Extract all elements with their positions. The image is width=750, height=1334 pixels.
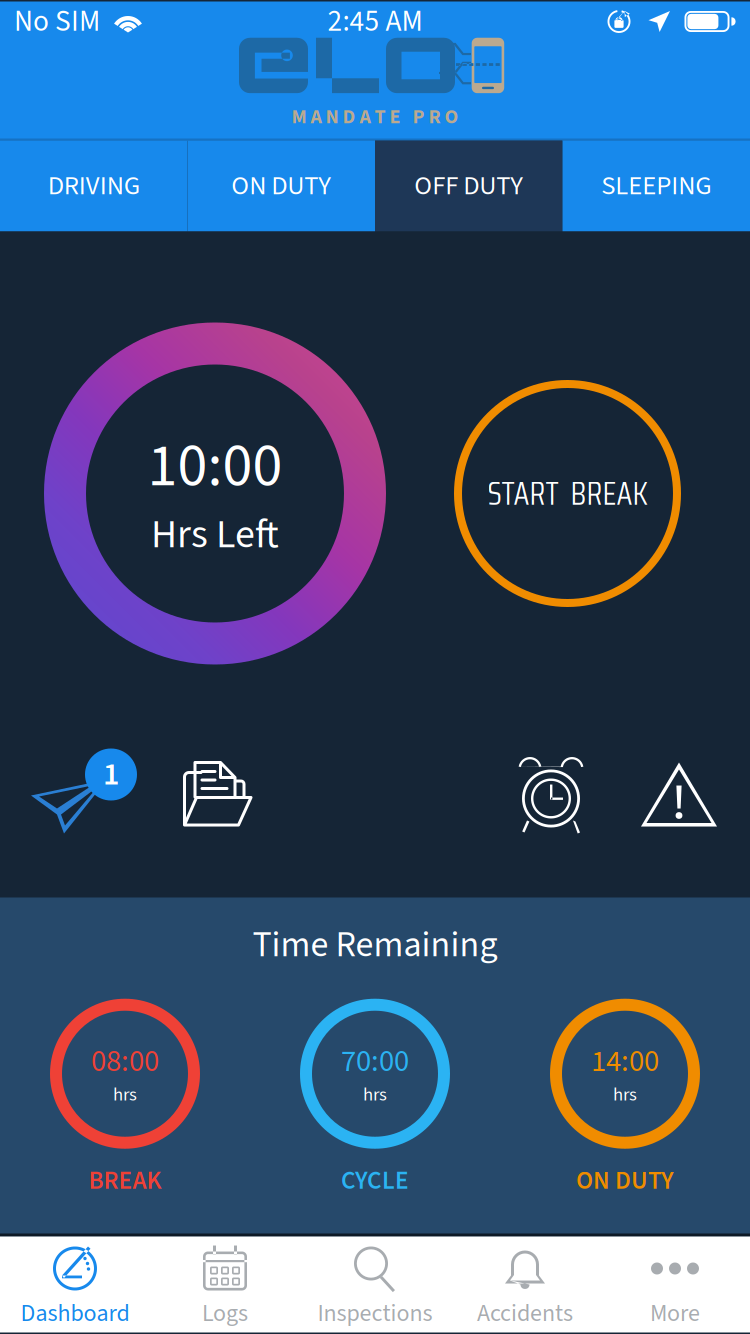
button[interactable]: More (600, 1236, 750, 1332)
button[interactable]: 14:00 (500, 999, 750, 1199)
staticText: 2:45 AM (327, 1, 422, 42)
staticText: SLEEPING (601, 167, 711, 205)
button[interactable]: ON DUTY (187, 140, 375, 231)
staticText: Inspections (317, 1296, 432, 1331)
button[interactable]: Logs (150, 1236, 300, 1332)
staticText: Time Remaining (252, 919, 497, 971)
staticText: hrs (613, 1081, 637, 1108)
staticText: ON DUTY (576, 1163, 674, 1199)
staticText: Hrs Left (151, 506, 279, 563)
staticText: ON DUTY (231, 167, 331, 205)
staticText: No SIM (14, 1, 100, 42)
staticText: BREAK (88, 1163, 161, 1199)
button[interactable]: SLEEPING (562, 140, 750, 231)
staticText: 08:00 (91, 1040, 159, 1083)
button[interactable]: Messages (30, 748, 140, 840)
button[interactable]: Documents (182, 756, 254, 832)
button[interactable]: 70:00 (250, 999, 500, 1199)
staticText: M A N D A T E P R O (291, 103, 458, 131)
staticText: Dashboard (20, 1296, 129, 1331)
button[interactable]: Inspections (300, 1236, 450, 1332)
button[interactable]: Alarm (516, 754, 586, 834)
button[interactable]: Warnings (640, 760, 718, 828)
staticText: DRIVING (48, 167, 140, 205)
staticText: CYCLE (341, 1163, 409, 1199)
staticText: 10:00 (147, 424, 282, 509)
staticText: OFF DUTY (414, 167, 523, 205)
button[interactable]: Accidents (450, 1236, 600, 1332)
staticText: 14:00 (591, 1040, 659, 1083)
staticText: 1 (103, 752, 119, 797)
button[interactable]: DRIVING (0, 140, 187, 231)
staticText: More (650, 1296, 700, 1331)
staticText: 70:00 (341, 1040, 409, 1083)
staticText: hrs (113, 1081, 137, 1108)
button[interactable]: START BREAK (454, 380, 681, 607)
staticText: Accidents (477, 1296, 573, 1331)
button[interactable]: OFF DUTY (375, 140, 562, 231)
button[interactable]: 08:00 (0, 999, 250, 1199)
staticText: Logs (202, 1296, 248, 1331)
button[interactable]: Dashboard (0, 1236, 150, 1332)
staticText: hrs (363, 1081, 387, 1108)
staticText: START BREAK (487, 468, 647, 519)
